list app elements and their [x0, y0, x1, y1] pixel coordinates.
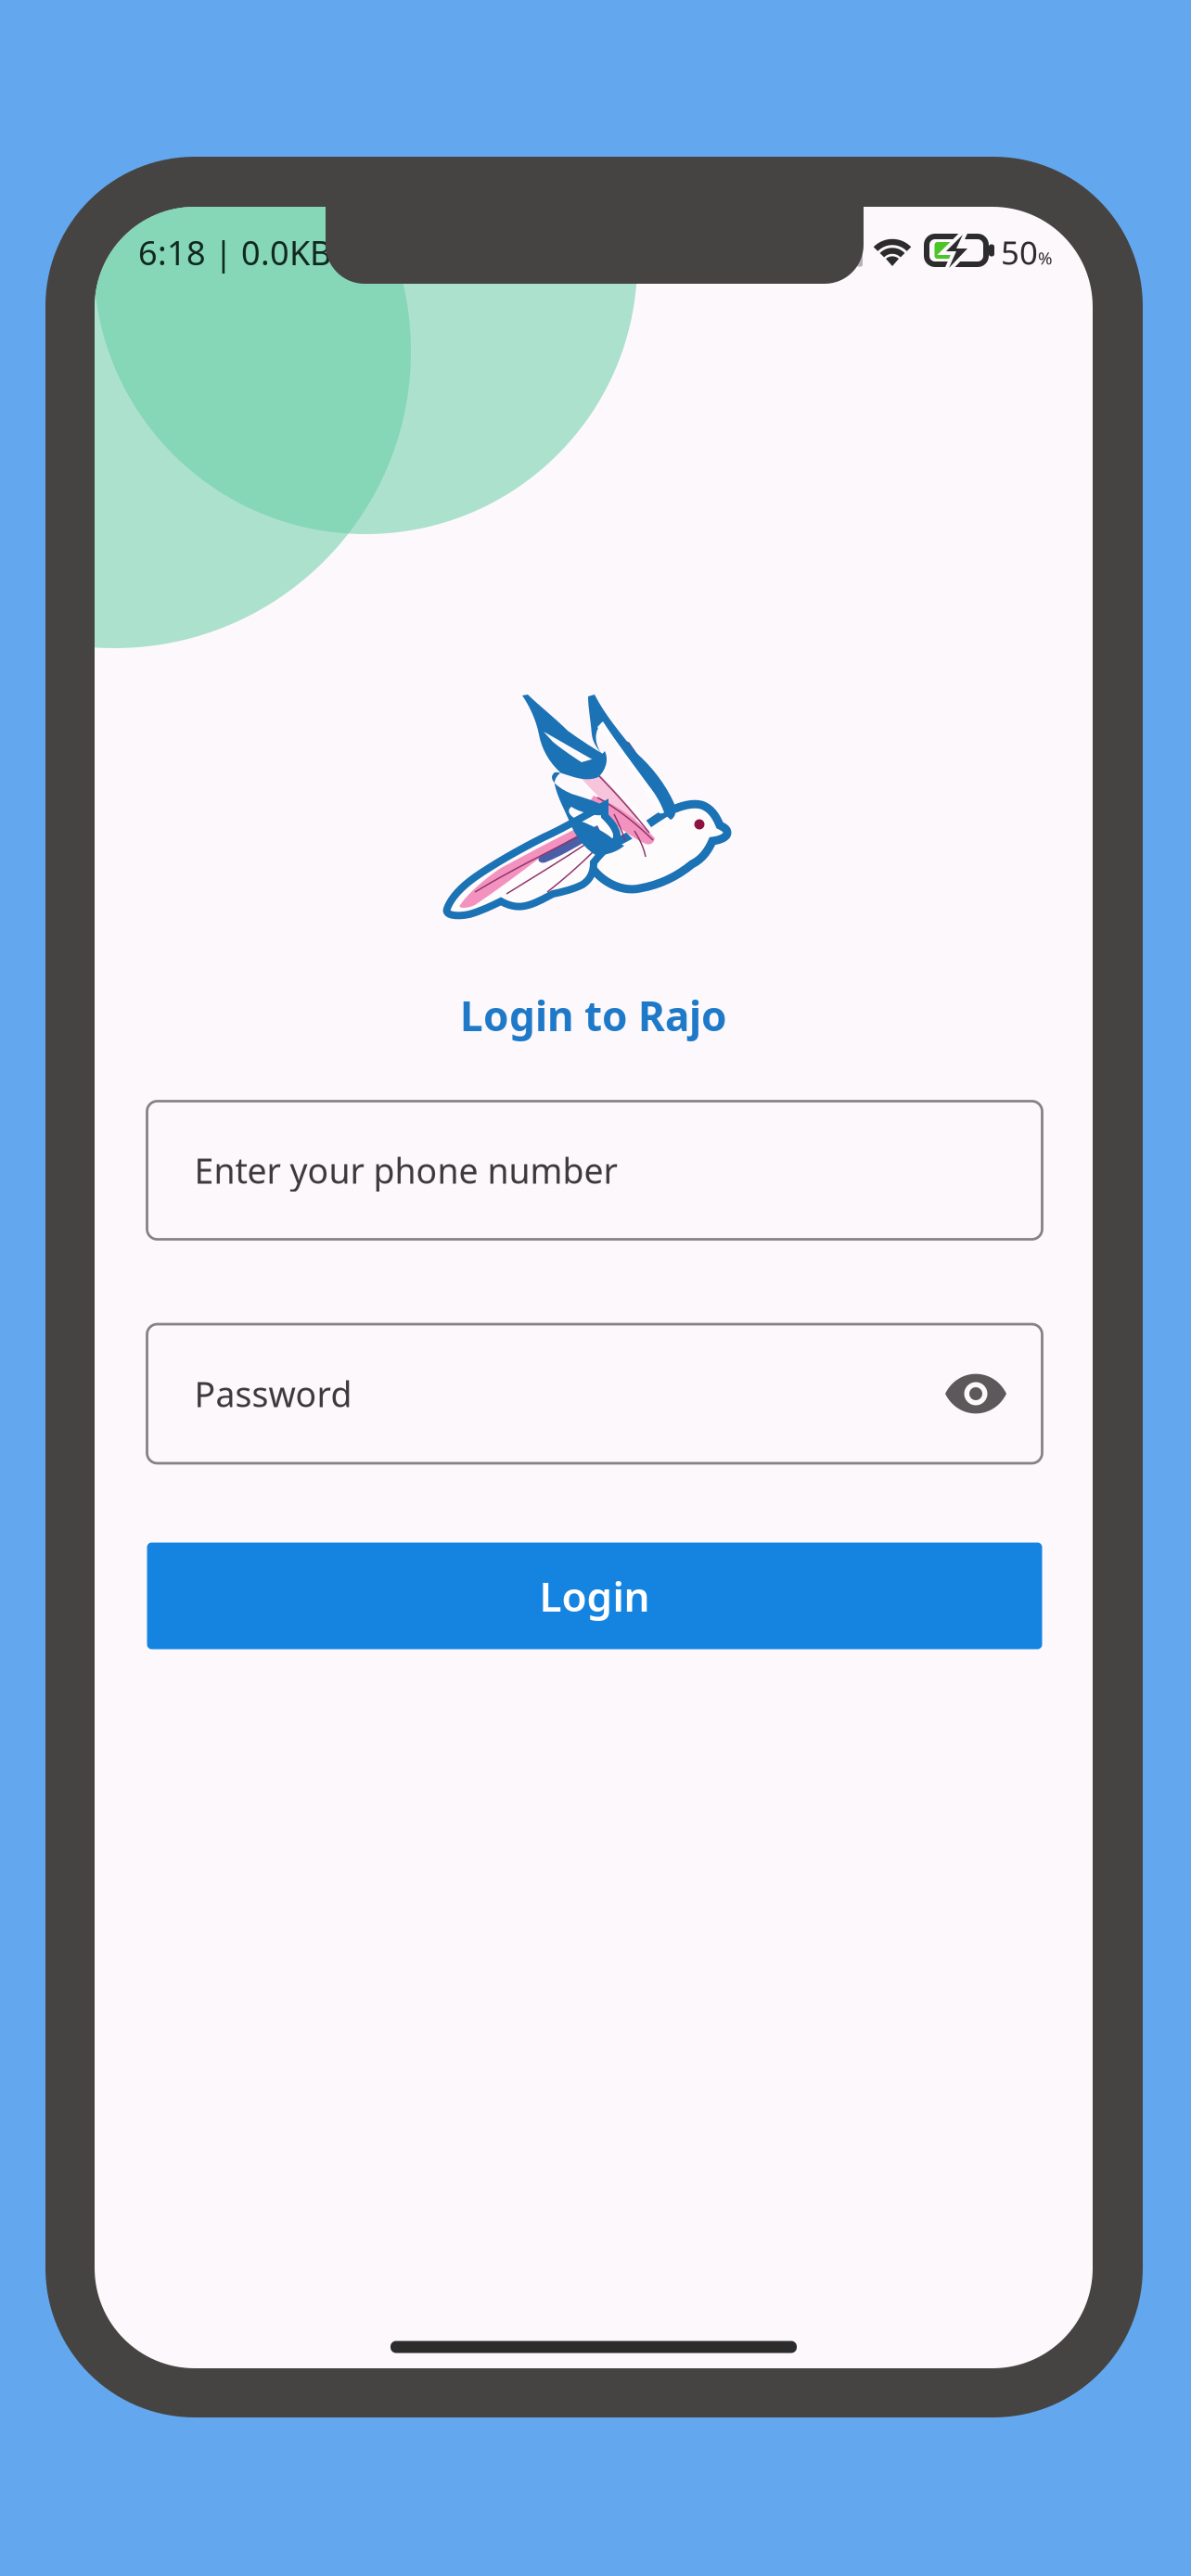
- button[interactable]: Login: [147, 1543, 1042, 1649]
- staticText: 50: [1001, 231, 1038, 274]
- staticText: Enter your phone number: [194, 1147, 617, 1193]
- staticText: %: [1038, 246, 1053, 269]
- staticText: Login: [539, 1569, 650, 1623]
- staticText: Password: [194, 1371, 352, 1417]
- button[interactable]: Show password: [925, 1343, 1027, 1445]
- staticText: Login to Rajo: [460, 988, 727, 1042]
- staticText: 6:18 | 0.0KB/: [138, 230, 343, 274]
